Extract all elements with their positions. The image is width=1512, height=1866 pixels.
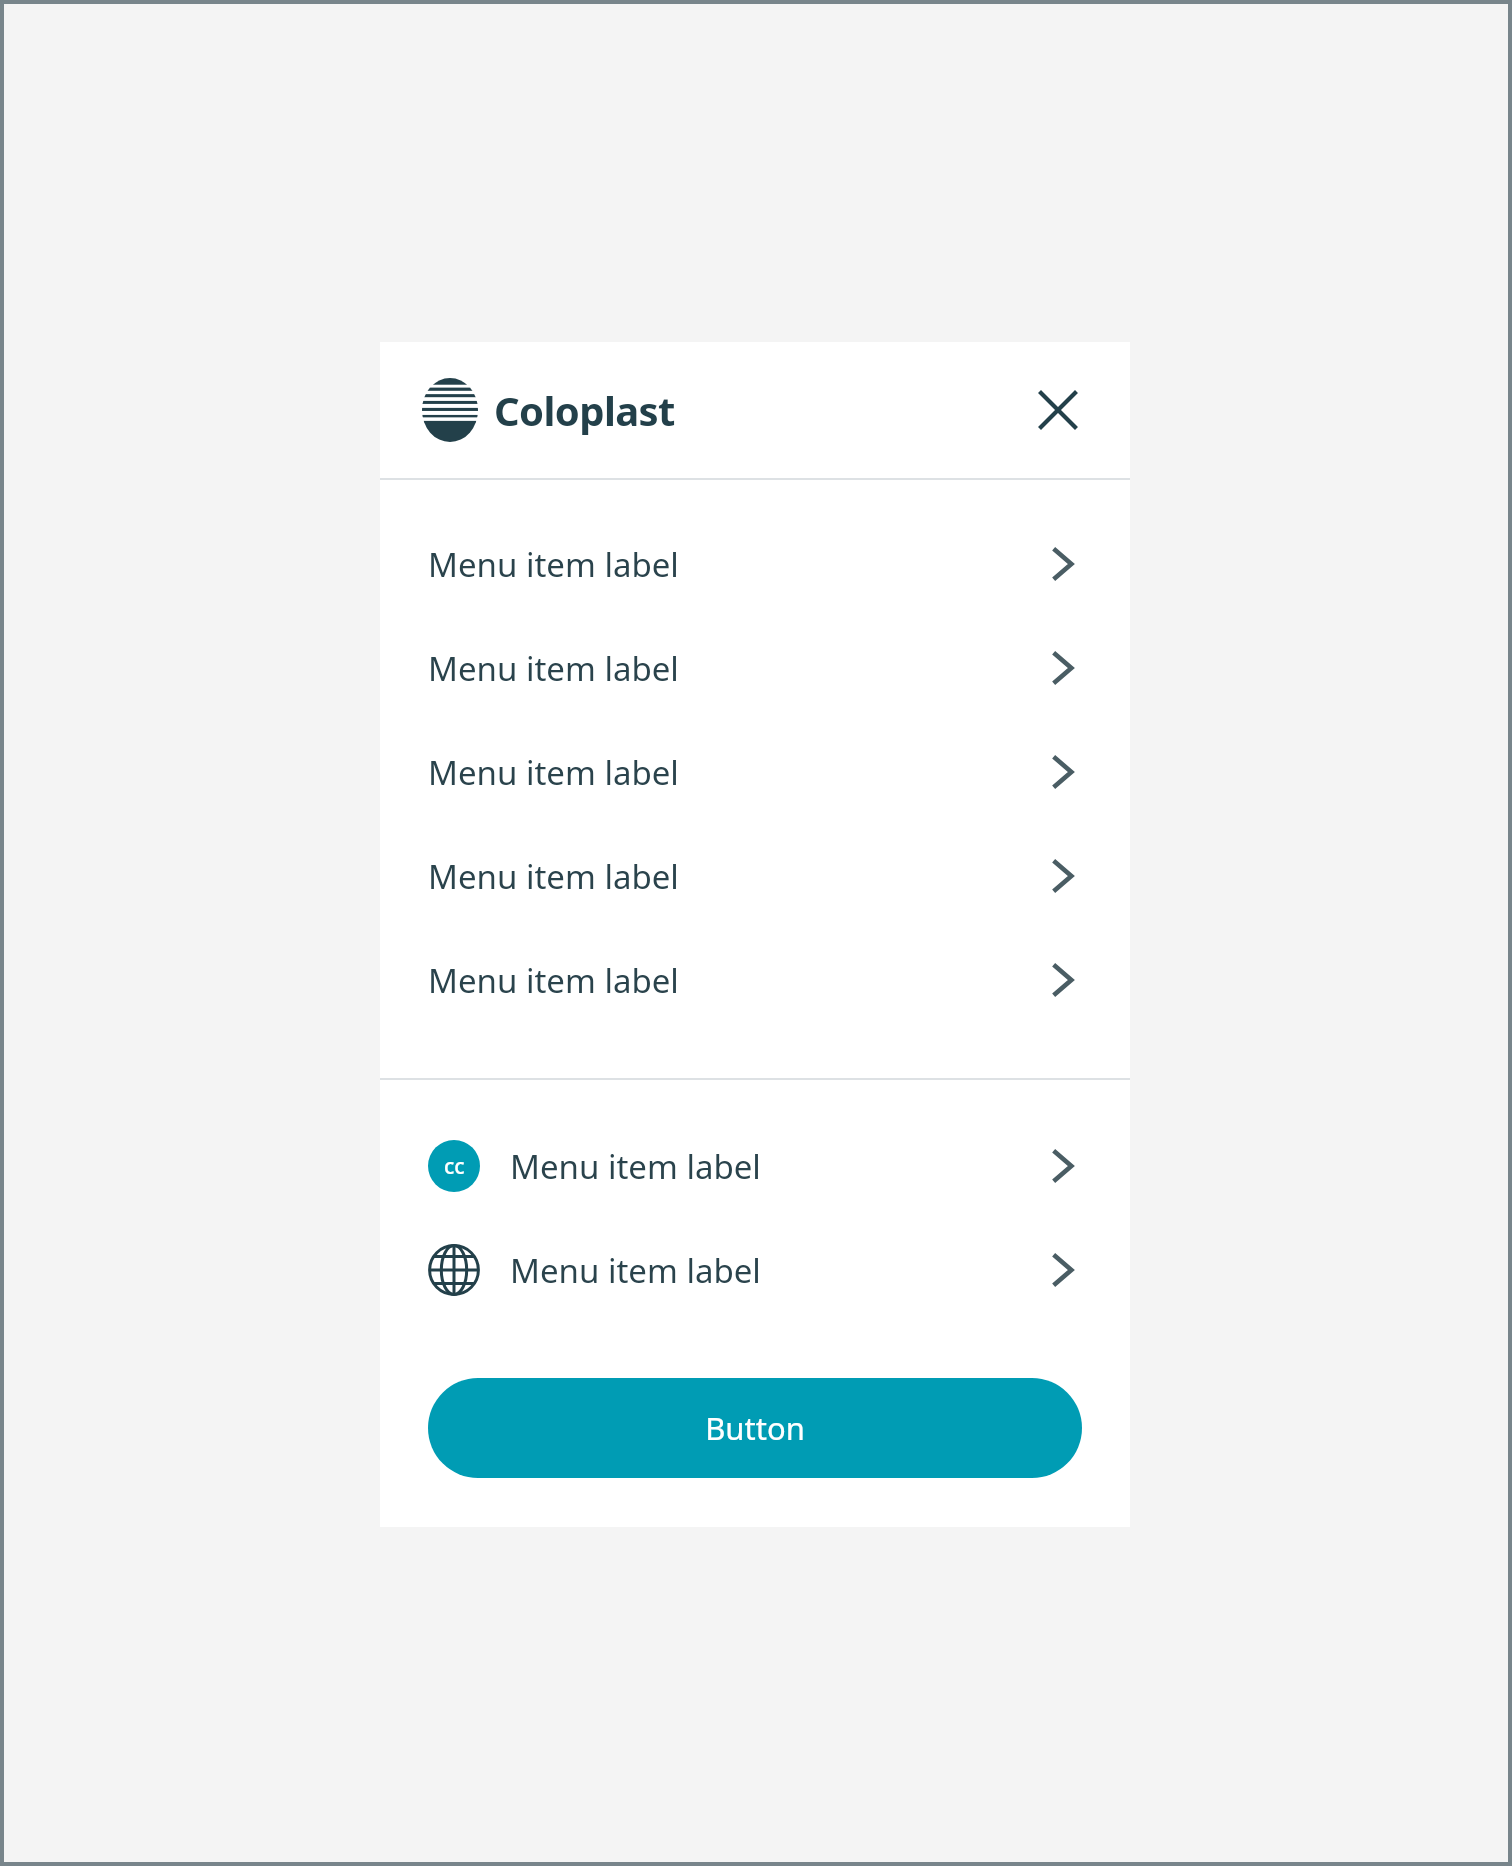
staticText: Coloplast — [494, 383, 675, 437]
button[interactable]: Menu item label — [380, 824, 1130, 928]
staticText: Menu item label — [428, 542, 679, 587]
staticText: Menu item label — [510, 1144, 761, 1189]
button[interactable]: Menu item label — [380, 1218, 1130, 1322]
button[interactable]: Close — [1026, 378, 1090, 442]
staticText: Menu item label — [428, 958, 679, 1003]
button[interactable]: cc — [380, 1114, 1130, 1218]
button[interactable]: Menu item label — [380, 928, 1130, 1032]
staticText: Menu item label — [510, 1248, 761, 1293]
button[interactable]: Button — [428, 1378, 1082, 1478]
button[interactable]: Menu item label — [380, 616, 1130, 720]
button[interactable]: Menu item label — [380, 720, 1130, 824]
staticText: cc — [444, 1152, 465, 1181]
staticText: Menu item label — [428, 750, 679, 795]
staticText: Menu item label — [428, 854, 679, 899]
staticText: Menu item label — [428, 646, 679, 691]
staticText: Button — [705, 1407, 805, 1449]
button[interactable]: Menu item label — [380, 512, 1130, 616]
